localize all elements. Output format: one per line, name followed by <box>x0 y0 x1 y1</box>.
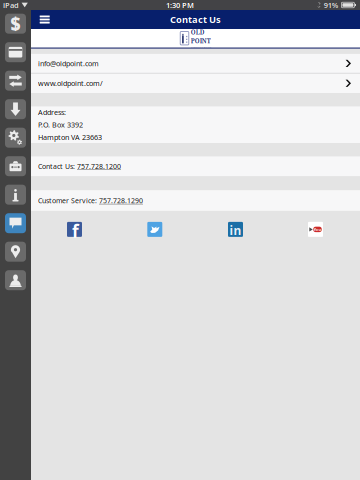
staticText: info@oldpoint.com <box>38 58 99 68</box>
staticText: Hampton VA 23663 <box>38 132 102 142</box>
staticText: in <box>229 222 241 238</box>
staticText: 757.728.1200 <box>77 161 121 171</box>
staticText: Address: <box>38 107 66 117</box>
button[interactable]: Cards <box>5 42 26 62</box>
button[interactable]: Settings <box>5 128 26 148</box>
staticText: www.oldpoint.com/ <box>38 78 103 88</box>
button[interactable]: www.oldpoint.com/ <box>31 74 360 93</box>
button[interactable]: Twitter <box>147 222 162 237</box>
staticText: iPad <box>3 0 19 10</box>
staticText: Customer Service: <box>38 196 99 205</box>
staticText: Contact Us <box>170 13 221 26</box>
staticText: f <box>72 219 79 242</box>
staticText: You <box>313 227 321 232</box>
button[interactable]: Locations <box>5 242 26 262</box>
staticText: NATIONAL BANK <box>191 45 211 49</box>
button[interactable]: Business Services <box>5 156 26 176</box>
staticText: Contact Us: <box>38 161 77 171</box>
staticText: P.O. Box 3392 <box>38 120 83 130</box>
button[interactable]: Information <box>5 185 26 205</box>
button[interactable]: YouTube <box>308 222 323 237</box>
staticText: POINT <box>191 37 211 45</box>
staticText: OLD <box>191 28 205 36</box>
button[interactable]: Contact Us <box>5 213 26 233</box>
staticText: 757.728.1290 <box>99 196 143 205</box>
staticText: $ <box>10 12 20 35</box>
button[interactable]: Transfers <box>5 71 26 91</box>
staticText: 1:30 PM <box>166 0 194 10</box>
button[interactable]: LinkedIn <box>228 222 243 237</box>
button[interactable]: info@oldpoint.com <box>31 54 360 73</box>
button[interactable]: Deposit <box>5 99 26 119</box>
button[interactable]: Contact Us: <box>31 156 360 176</box>
button[interactable]: Customer Service: <box>31 190 360 211</box>
staticText: 91% <box>324 0 339 10</box>
button[interactable]: Accounts <box>5 14 26 34</box>
button[interactable]: Profile <box>5 270 26 290</box>
button[interactable]: Facebook <box>67 222 82 237</box>
button[interactable]: Menu <box>31 10 57 29</box>
